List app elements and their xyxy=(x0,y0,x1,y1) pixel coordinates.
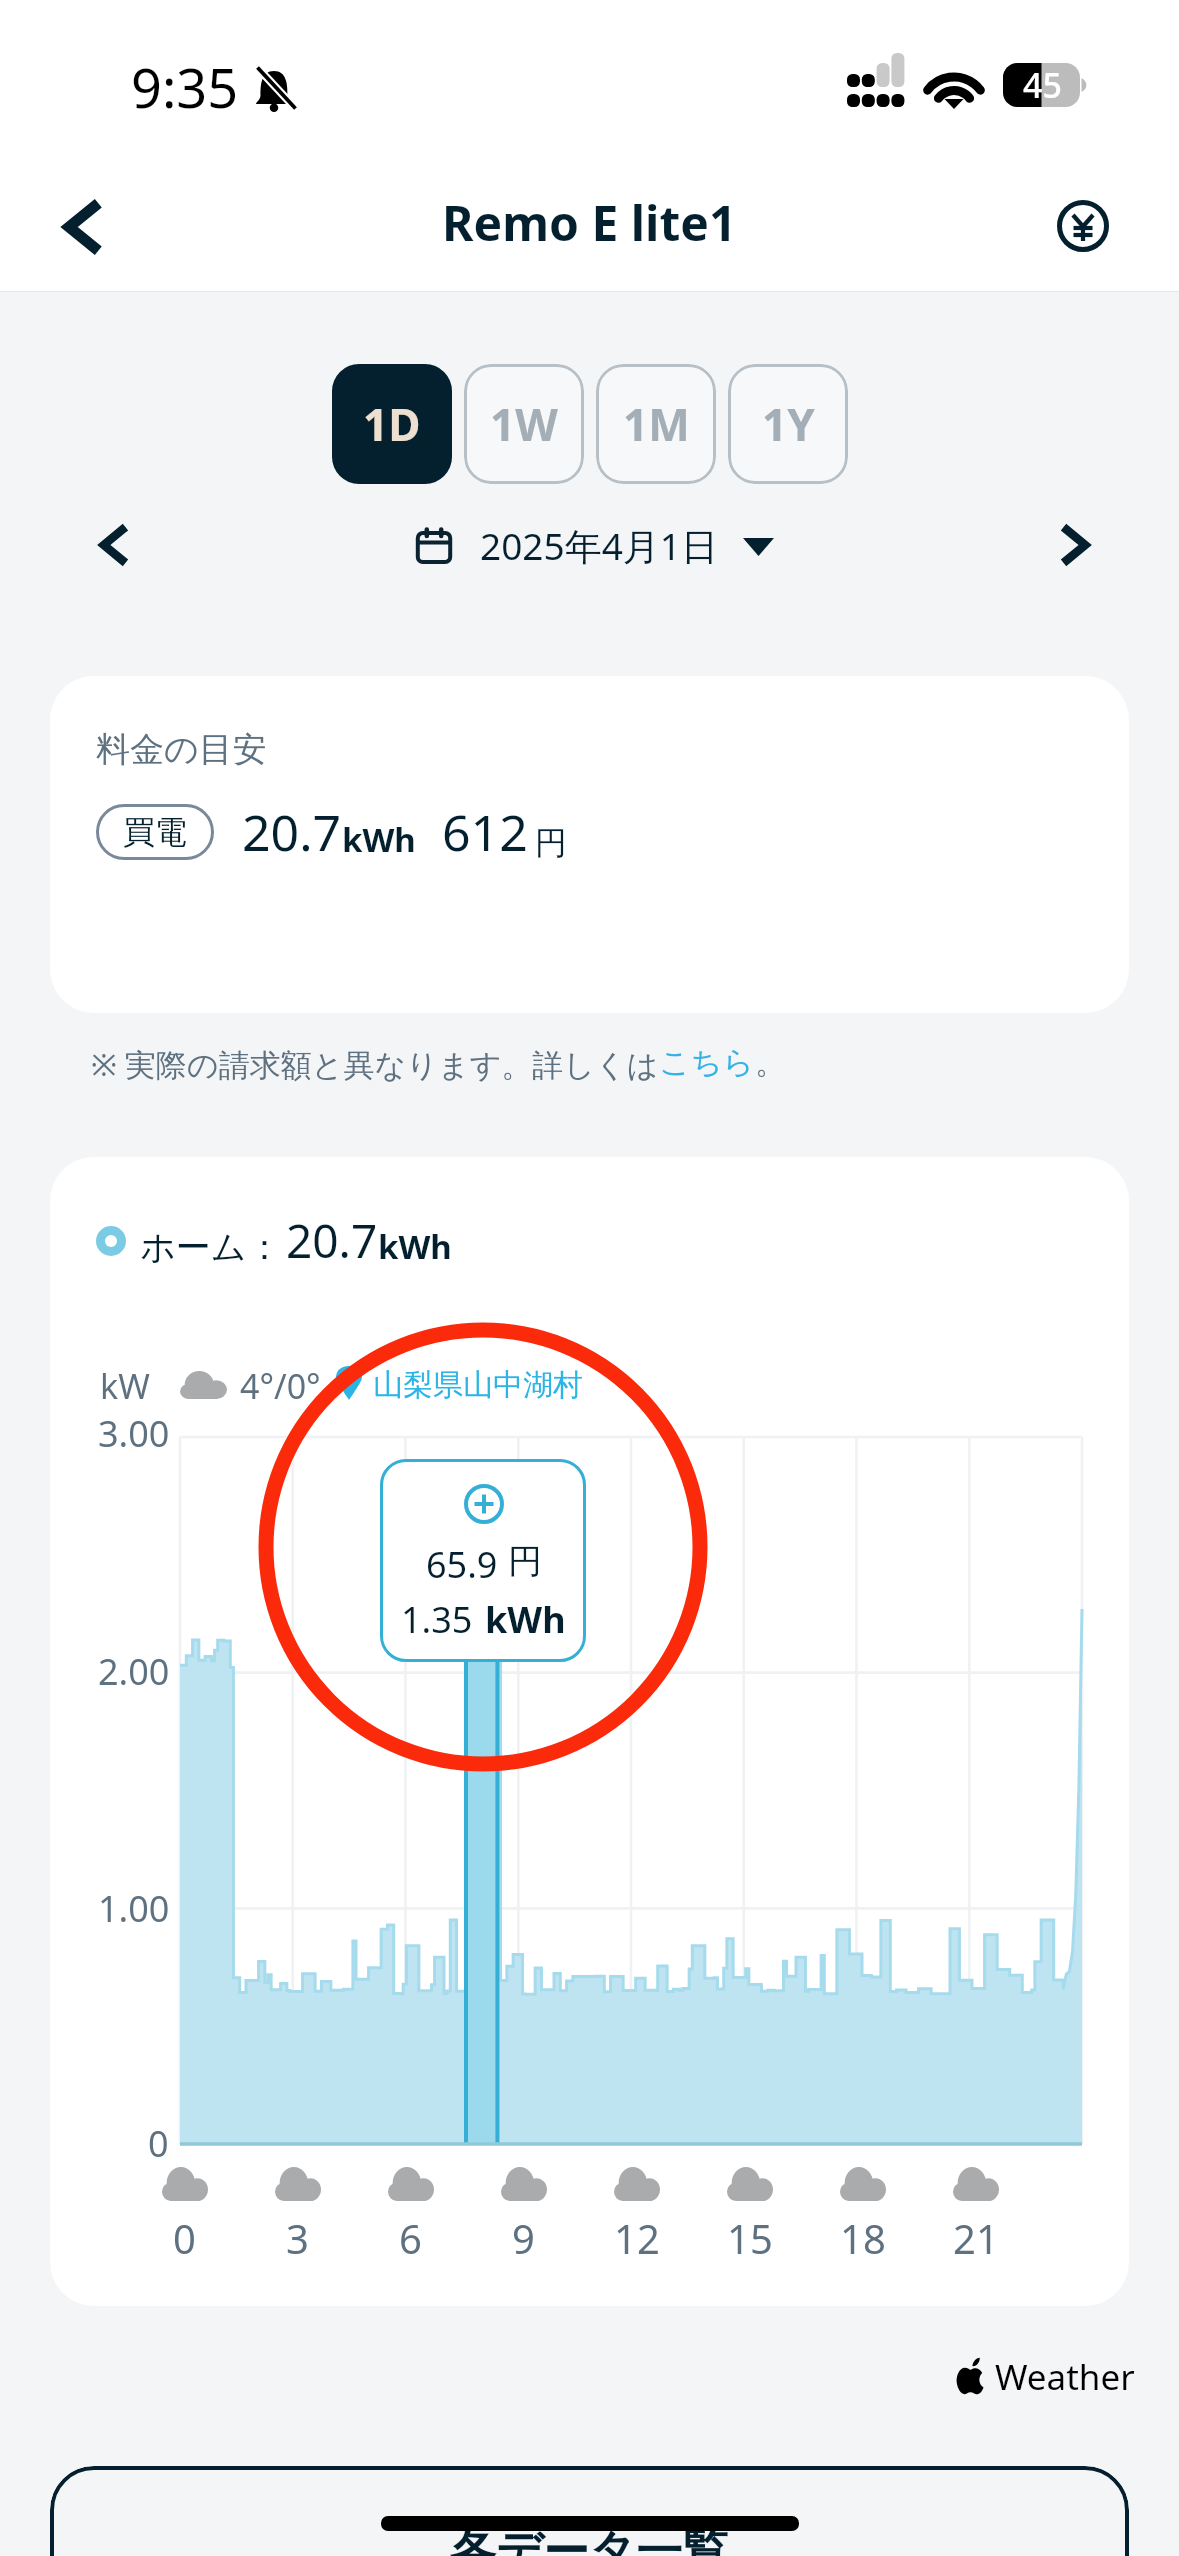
staticText: 65.9 xyxy=(426,1540,498,1589)
button[interactable]: Back xyxy=(40,184,126,270)
staticText: 料金の目安 xyxy=(96,728,267,771)
staticText: Remo E lite1 xyxy=(442,190,737,255)
button[interactable]: 山梨県山中湖村 xyxy=(336,1366,583,1404)
staticText: 0 xyxy=(148,2119,169,2168)
button[interactable]: 2025年4月1日 xyxy=(416,520,774,571)
staticText: 18 xyxy=(840,2211,886,2265)
staticText: 2.00 xyxy=(98,1647,170,1696)
button[interactable]: 1Y xyxy=(728,364,848,484)
staticText: 円 xyxy=(535,823,567,863)
staticText: 9:35 xyxy=(131,50,239,124)
staticText: 円 xyxy=(508,1540,542,1583)
staticText: 15 xyxy=(727,2211,773,2265)
staticText: 2025年4月1日 xyxy=(480,520,718,571)
staticText: 1Y xyxy=(762,394,815,454)
staticText: 612 xyxy=(442,798,528,866)
button[interactable]: Apple Weather xyxy=(955,2352,1135,2400)
staticText: 1D xyxy=(363,394,421,454)
staticText: kWh xyxy=(485,1595,566,1644)
staticText: 3.00 xyxy=(98,1409,170,1458)
staticText: kWh xyxy=(342,817,416,862)
staticText: 3 xyxy=(286,2211,309,2265)
staticText: Weather xyxy=(995,2353,1135,2401)
button[interactable]: 65.9 xyxy=(380,1459,586,1662)
button[interactable]: 1M xyxy=(596,364,716,484)
staticText: 0 xyxy=(173,2211,196,2265)
button[interactable]: Next day xyxy=(1039,508,1113,582)
staticText: 4°/0° xyxy=(240,1363,321,1407)
button[interactable]: 料金の目安 xyxy=(50,676,1129,1013)
staticText: 買電 xyxy=(123,812,187,852)
staticText: ※ 実際の請求額と異なります。詳しくは xyxy=(91,1043,659,1085)
button[interactable]: Electricity price settings xyxy=(1040,183,1126,269)
staticText: kWh xyxy=(378,1224,452,1269)
button[interactable]: ホーム： xyxy=(96,1209,452,1272)
staticText: 。 xyxy=(755,1043,786,1082)
staticText: 21 xyxy=(953,2211,999,2265)
staticText: 1.35 xyxy=(401,1595,473,1644)
staticText: 6 xyxy=(399,2211,422,2265)
staticText: 12 xyxy=(614,2211,660,2265)
button[interactable]: 1D xyxy=(332,364,452,484)
staticText: 山梨県山中湖村 xyxy=(373,1366,583,1404)
staticText: 9 xyxy=(512,2211,535,2265)
staticText: ホーム： xyxy=(140,1225,282,1269)
staticText: 1W xyxy=(490,394,558,454)
button[interactable]: Previous day xyxy=(76,508,150,582)
staticText: 20.7 xyxy=(286,1209,378,1272)
staticText: 45 xyxy=(1023,62,1062,106)
button[interactable]: こちら xyxy=(659,1043,755,1082)
staticText: 1M xyxy=(623,394,690,454)
button[interactable]: 各データ一覧 xyxy=(50,2466,1129,2556)
button[interactable]: 1W xyxy=(464,364,584,484)
staticText: 各データ一覧 xyxy=(450,2523,729,2556)
staticText: 1.00 xyxy=(98,1884,170,1933)
staticText: kW xyxy=(100,1363,150,1407)
staticText: 20.7 xyxy=(242,798,342,866)
